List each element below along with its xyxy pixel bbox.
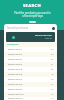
staticText: 24 xyxy=(51,48,54,51)
button[interactable]: Search term 5 xyxy=(8,67,54,72)
button[interactable]: Search term 1 xyxy=(8,47,54,52)
staticText: 18 xyxy=(51,78,54,81)
staticText: TRENDING xyxy=(7,43,19,46)
staticText: Search term 2 xyxy=(8,53,23,56)
staticText: Search products xyxy=(7,26,29,30)
staticText: SEARCH xyxy=(23,3,41,9)
staticText: Search term 1 xyxy=(8,48,23,51)
button[interactable]: Search term 10 xyxy=(8,92,54,97)
other: Search xyxy=(52,27,55,30)
button[interactable]: Filters xyxy=(29,21,36,23)
button[interactable]: Search term 11 xyxy=(8,97,54,100)
staticText: 16 xyxy=(51,88,54,91)
staticText: 22 xyxy=(51,58,54,61)
staticText: 15 xyxy=(51,93,54,96)
button[interactable]: Search term 3 xyxy=(8,57,54,62)
staticText: Search term 3 xyxy=(8,58,23,61)
staticText: Find the products you want in a few simp… xyxy=(14,11,51,17)
staticText: Search term 10 xyxy=(8,93,24,96)
staticText: 17 xyxy=(51,83,54,86)
staticText: Search term 11 xyxy=(8,97,24,100)
staticText: 19 xyxy=(51,73,54,76)
staticText: Search term 7 xyxy=(8,78,23,81)
staticText: 23 xyxy=(51,53,54,56)
button[interactable]: Search term 2 xyxy=(8,52,54,57)
staticText: 14 xyxy=(51,97,54,100)
button[interactable]: Search products xyxy=(7,24,55,32)
staticText: Search term 6 xyxy=(8,73,23,76)
staticText: 20 xyxy=(51,68,54,71)
button[interactable]: Search term 8 xyxy=(8,82,54,87)
staticText: view all xyxy=(45,37,52,40)
staticText: Search term 4 xyxy=(8,63,23,66)
button[interactable]: Search term 9 xyxy=(8,87,54,92)
button[interactable]: Search term 4 xyxy=(8,62,54,67)
staticText: Search term 8 xyxy=(8,83,23,86)
button[interactable]: Search term 6 xyxy=(8,72,54,77)
staticText: 21 xyxy=(51,63,54,66)
button[interactable]: Search term 7 xyxy=(8,77,54,82)
button[interactable]: Recent searches xyxy=(6,32,55,42)
staticText: Search term 5 xyxy=(8,68,23,71)
staticText: Recent searches xyxy=(35,34,52,37)
staticText: Search term 9 xyxy=(8,88,23,91)
